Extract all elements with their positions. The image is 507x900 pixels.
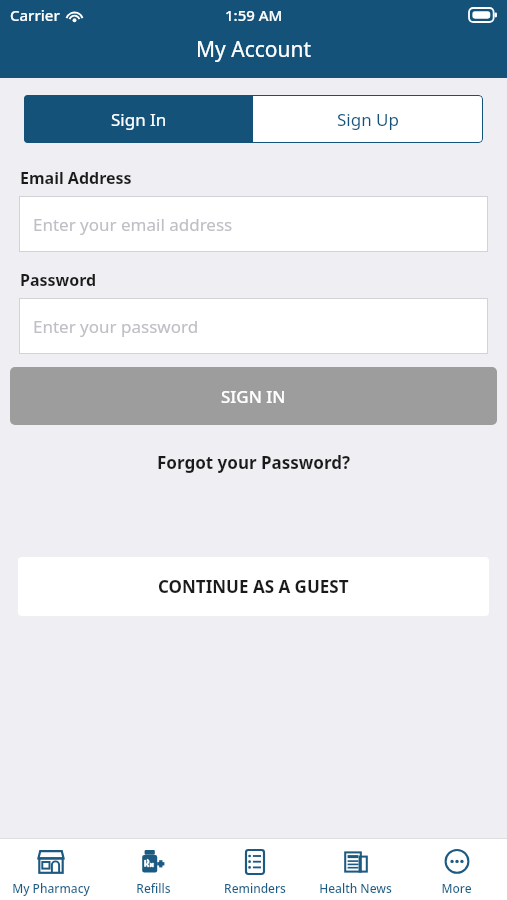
staticText: Sign In — [111, 108, 167, 131]
button[interactable]: CONTINUE AS A GUEST — [18, 557, 489, 616]
staticText: Enter your email address — [33, 213, 233, 236]
button[interactable]: Enter your email address — [19, 196, 488, 252]
button[interactable]: Sign Up — [253, 95, 483, 143]
button[interactable]: More — [406, 842, 507, 900]
staticText: SIGN IN — [221, 385, 286, 408]
staticText: My Account — [196, 35, 312, 64]
staticText: More — [441, 880, 472, 896]
staticText: Reminders — [224, 880, 286, 896]
staticText: Password — [20, 269, 97, 291]
staticText: Health News — [319, 880, 392, 896]
button[interactable]: Enter your password — [19, 298, 488, 354]
button[interactable]: My Pharmacy — [0, 842, 102, 900]
staticText: Refills — [136, 880, 171, 896]
other: Reminders — [240, 847, 270, 877]
button[interactable]: SIGN IN — [10, 367, 497, 425]
staticText: Forgot your Password? — [157, 451, 351, 474]
button[interactable]: Refills — [102, 842, 204, 900]
button[interactable]: Sign In — [24, 95, 253, 143]
staticText: Carrier — [10, 5, 60, 25]
button[interactable]: Reminders — [204, 842, 305, 900]
staticText: Email Address — [20, 167, 132, 189]
staticText: My Pharmacy — [12, 880, 90, 896]
staticText: Sign Up — [337, 108, 399, 131]
staticText: CONTINUE AS A GUEST — [158, 575, 349, 598]
other: Refills — [138, 847, 168, 877]
other: More — [442, 847, 472, 877]
other: My Pharmacy — [36, 847, 66, 877]
other: Health News — [341, 847, 371, 877]
staticText: Enter your password — [33, 315, 199, 338]
button[interactable]: Health News — [305, 842, 406, 900]
staticText: 1:59 AM — [225, 5, 283, 25]
button[interactable]: Forgot your Password? — [0, 447, 507, 477]
